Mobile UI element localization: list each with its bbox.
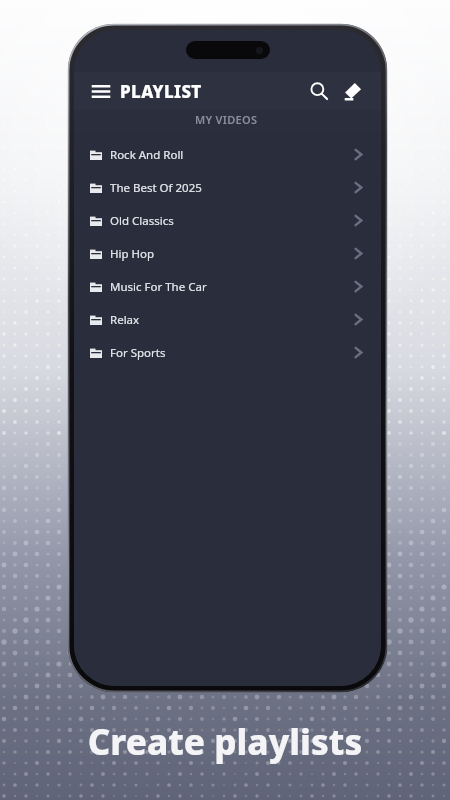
button[interactable]: The Best Of 2025 — [74, 171, 381, 204]
staticText: MY VIDEOS — [195, 112, 258, 127]
button[interactable]: Menu — [90, 80, 112, 102]
staticText: PLAYLIST — [120, 80, 202, 103]
staticText: Old Classics — [110, 213, 354, 229]
staticText: The Best Of 2025 — [110, 180, 354, 196]
staticText: Music For The Car — [110, 279, 354, 295]
button[interactable]: Edit — [339, 77, 367, 105]
button[interactable]: Relax — [74, 303, 381, 336]
button[interactable]: Music For The Car — [74, 270, 381, 303]
button[interactable]: For Sports — [74, 336, 381, 369]
button[interactable]: MY VIDEOS — [90, 112, 363, 130]
staticText: Create playlists — [0, 718, 450, 766]
button[interactable]: Rock And Roll — [74, 138, 381, 171]
button[interactable]: Old Classics — [74, 204, 381, 237]
staticText: Hip Hop — [110, 246, 354, 262]
button[interactable]: Search — [305, 77, 333, 105]
staticText: Relax — [110, 312, 354, 328]
staticText: For Sports — [110, 345, 354, 361]
button[interactable]: Hip Hop — [74, 237, 381, 270]
staticText: Rock And Roll — [110, 147, 354, 163]
